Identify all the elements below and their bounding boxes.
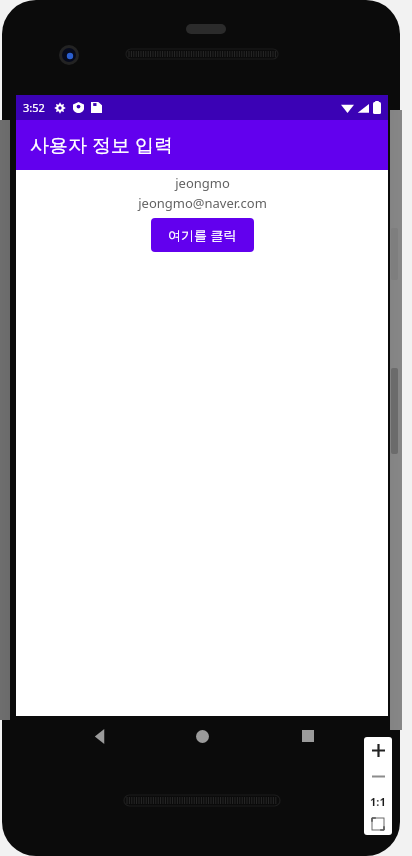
staticText: jeongmo: [175, 174, 230, 192]
button[interactable]: Recent apps: [286, 716, 330, 756]
button[interactable]: 1:1: [364, 789, 392, 813]
button[interactable]: Zoom in: [364, 737, 392, 763]
staticText: 여기를 클릭: [168, 226, 237, 244]
staticText: 3:52: [23, 100, 45, 115]
button[interactable]: 여기를 클릭: [151, 218, 254, 252]
staticText: jeongmo@naver.com: [138, 194, 267, 212]
button[interactable]: Home: [180, 716, 224, 756]
button[interactable]: Zoom out: [364, 763, 392, 789]
staticText: 사용자 정보 입력: [30, 132, 173, 158]
button[interactable]: Back: [78, 716, 122, 756]
staticText: 1:1: [370, 794, 386, 809]
button[interactable]: Fit to screen: [364, 813, 392, 835]
